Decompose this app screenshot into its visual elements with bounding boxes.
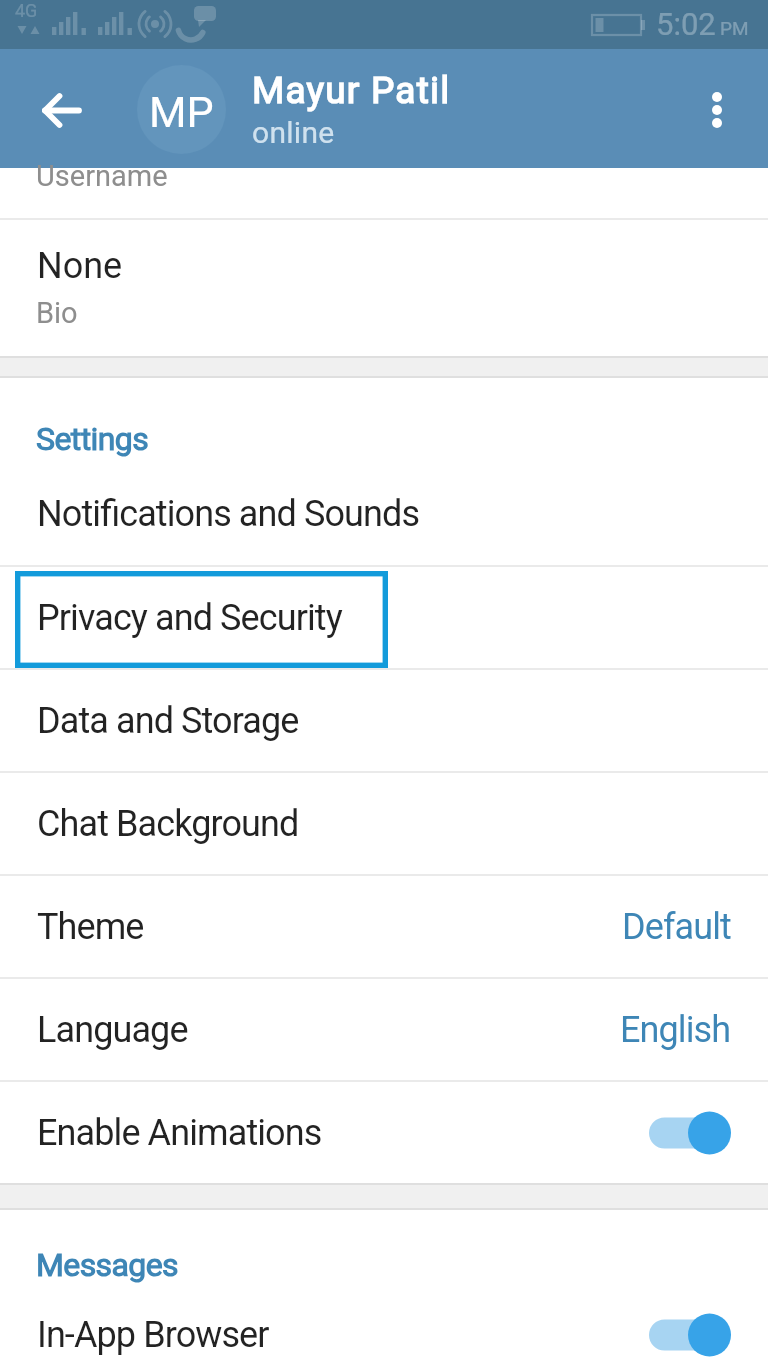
button[interactable]: Chat Background xyxy=(0,773,768,874)
staticText: Language xyxy=(37,1009,188,1051)
button[interactable] xyxy=(649,1110,731,1156)
button[interactable]: More options xyxy=(696,83,748,135)
button[interactable]: Username xyxy=(0,168,768,218)
staticText: Bio xyxy=(36,296,78,330)
staticText: Theme xyxy=(37,906,144,948)
button[interactable]: Profile photo xyxy=(137,65,226,154)
button[interactable]: Language xyxy=(0,979,768,1080)
staticText: Enable Animations xyxy=(37,1112,322,1154)
staticText: online xyxy=(252,115,335,150)
button[interactable]: Data and Storage xyxy=(0,670,768,771)
staticText: PM xyxy=(720,17,749,39)
button[interactable]: Back xyxy=(14,78,76,140)
button[interactable]: Privacy and Security xyxy=(0,567,768,668)
staticText: None xyxy=(37,245,123,287)
staticText: Mayur Patil xyxy=(252,69,451,112)
staticText: In-App Browser xyxy=(37,1314,269,1356)
staticText: Chat Background xyxy=(37,803,299,845)
staticText: English xyxy=(620,1009,731,1051)
button[interactable] xyxy=(649,1312,731,1358)
button[interactable]: None xyxy=(0,220,768,356)
button[interactable]: Enable Animations xyxy=(0,1082,768,1183)
staticText: 4G xyxy=(15,0,38,21)
staticText: Privacy and Security xyxy=(37,597,342,639)
button[interactable]: Notifications and Sounds xyxy=(0,463,768,565)
staticText: MP xyxy=(149,87,214,137)
staticText: Notifications and Sounds xyxy=(37,493,420,535)
button[interactable]: In-App Browser xyxy=(0,1283,768,1365)
staticText: Settings xyxy=(36,420,149,458)
staticText: Default xyxy=(622,906,731,948)
staticText: Data and Storage xyxy=(37,700,299,742)
staticText: Username xyxy=(36,159,168,193)
button[interactable]: Theme xyxy=(0,876,768,977)
staticText: 5:02 xyxy=(656,6,716,42)
staticText: Messages xyxy=(36,1246,178,1284)
